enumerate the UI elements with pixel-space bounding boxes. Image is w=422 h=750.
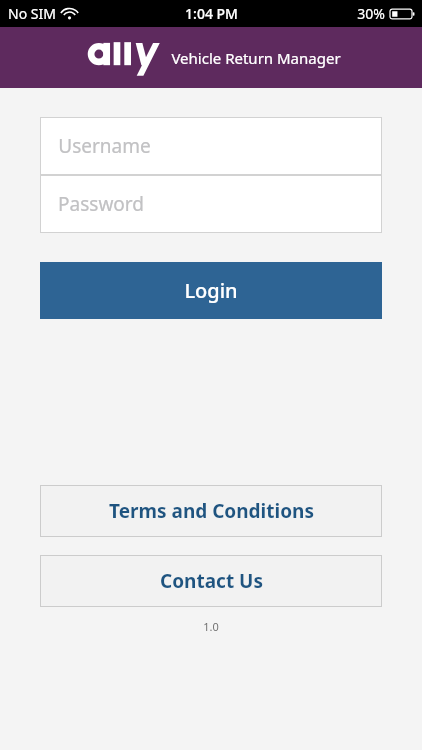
- button[interactable]: Password: [40, 175, 382, 233]
- staticText: 1.0: [203, 619, 219, 634]
- staticText: Username: [58, 133, 151, 159]
- button[interactable]: Username: [40, 117, 382, 175]
- button[interactable]: Login: [40, 262, 382, 319]
- staticText: Login: [184, 277, 238, 304]
- staticText: No SIM: [8, 4, 56, 23]
- button[interactable]: Contact Us: [40, 555, 382, 607]
- button[interactable]: Terms and Conditions: [40, 485, 382, 537]
- staticText: Password: [58, 191, 144, 217]
- staticText: Vehicle Return Manager: [171, 48, 341, 68]
- staticText: 1:04 PM: [185, 4, 238, 23]
- staticText: Terms and Conditions: [109, 498, 314, 524]
- staticText: Contact Us: [160, 568, 263, 594]
- staticText: 30%: [357, 4, 385, 23]
